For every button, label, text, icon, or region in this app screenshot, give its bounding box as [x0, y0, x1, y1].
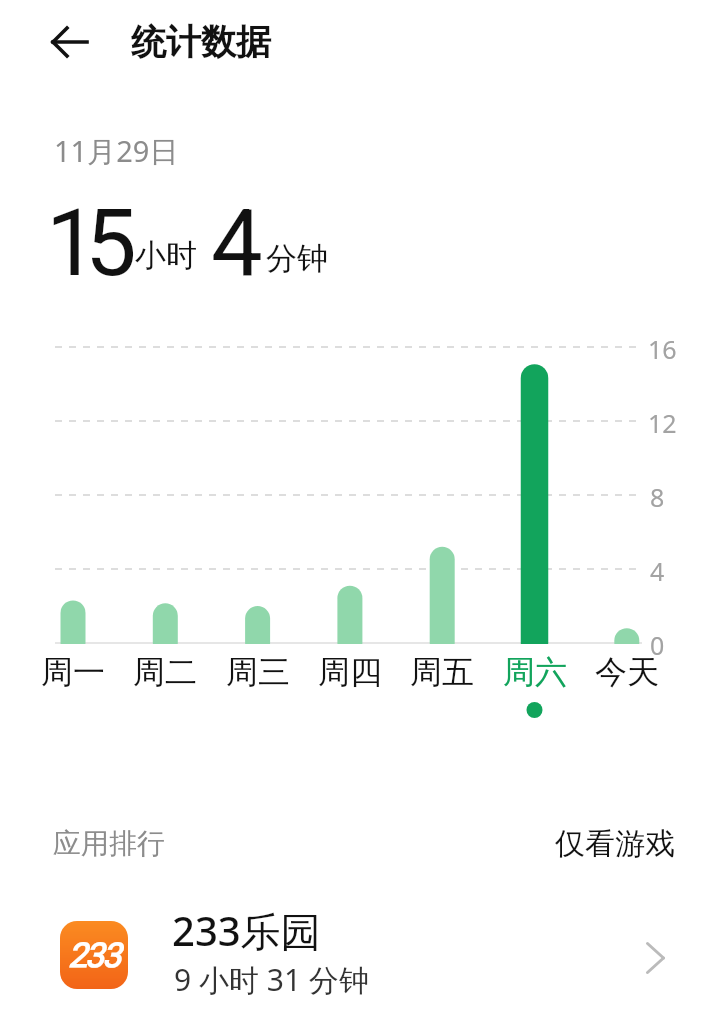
staticText: 11月29日 [54, 131, 179, 171]
staticText: 周二 [133, 652, 197, 692]
staticText: 应用排行 [53, 826, 165, 861]
staticText: 0 [650, 628, 665, 662]
button[interactable]: 仅看游戏 [547, 819, 683, 869]
staticText: 周六 [503, 652, 567, 692]
button[interactable]: 233 [0, 900, 720, 1010]
staticText: 233 [68, 935, 120, 975]
staticText: 4 [211, 190, 263, 298]
staticText: 12 [648, 406, 677, 440]
staticText: 5 [85, 190, 137, 298]
staticText: 小时 [135, 236, 197, 275]
staticText: 今天 [595, 652, 659, 692]
staticText: 9 小时 31 分钟 [174, 959, 369, 1000]
staticText: 仅看游戏 [555, 825, 675, 863]
staticText: 周四 [318, 652, 382, 692]
staticText: 4 [650, 554, 665, 588]
staticText: 1 [46, 190, 98, 298]
staticText: 周一 [41, 652, 105, 692]
staticText: 分钟 [266, 239, 328, 278]
staticText: 周五 [410, 652, 474, 692]
button[interactable] [40, 12, 100, 72]
staticText: 8 [650, 480, 665, 514]
staticText: 16 [648, 332, 677, 366]
staticText: 233乐园 [172, 903, 321, 958]
staticText: 周三 [226, 652, 290, 692]
staticText: 统计数据 [131, 20, 271, 64]
